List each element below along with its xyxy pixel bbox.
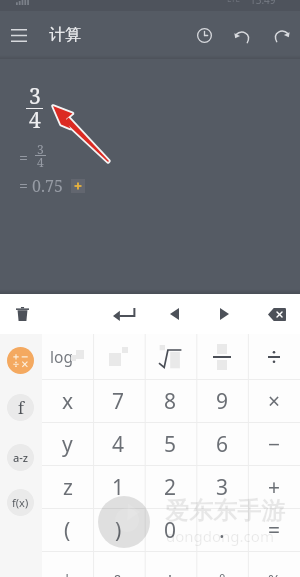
staticText: 8 [164, 387, 177, 416]
staticText: 计算 [49, 25, 81, 45]
button[interactable]: y [42, 423, 93, 466]
staticText: x [62, 387, 74, 416]
button[interactable]: History [185, 16, 223, 54]
staticText: 3 [29, 82, 41, 111]
staticText: 1 [112, 473, 125, 502]
button[interactable]: Enter [103, 294, 145, 334]
button[interactable]: Menu [0, 16, 38, 54]
button[interactable]: z [42, 466, 93, 509]
staticText: % [268, 569, 281, 577]
button[interactable]: + [248, 466, 300, 509]
button[interactable]: ) [93, 509, 144, 552]
button[interactable]: × [248, 380, 300, 423]
button[interactable]: 8 [144, 380, 196, 423]
staticText: . [219, 516, 225, 545]
button[interactable]: Functions [7, 394, 34, 421]
staticText: 9 [216, 387, 229, 416]
staticText: 4 [37, 154, 44, 170]
staticText: + [268, 473, 281, 502]
staticText: f [18, 397, 24, 419]
button[interactable]: Redo [262, 16, 300, 54]
staticText: ( [64, 516, 71, 545]
staticText: = [268, 516, 281, 545]
staticText: = [19, 147, 28, 169]
staticText: 3 [37, 141, 44, 157]
button[interactable]: 5 [144, 423, 196, 466]
button[interactable] [93, 334, 144, 380]
staticText: | [63, 569, 72, 577]
button[interactable]: Custom functions [7, 489, 34, 516]
staticText: f(x) [12, 495, 29, 510]
staticText: 4 [29, 106, 41, 135]
button[interactable]: 1 [93, 466, 144, 509]
button[interactable]: ! [144, 552, 196, 577]
button[interactable]: Add [71, 179, 85, 193]
button[interactable]: 0 [144, 509, 196, 552]
staticText: 6 [216, 430, 229, 459]
staticText: a-z [13, 450, 29, 465]
staticText: LTE [227, 0, 240, 4]
staticText: = 0.75 [19, 175, 63, 197]
button[interactable]: Move left [153, 294, 195, 334]
staticText: 2 [164, 473, 177, 502]
button[interactable] [144, 334, 196, 380]
button[interactable] [248, 334, 300, 380]
button[interactable]: x [42, 380, 93, 423]
staticText: & [113, 569, 124, 577]
button[interactable]: 2 [144, 466, 196, 509]
button[interactable]: Clear [1, 294, 43, 334]
staticText: 7 [112, 387, 125, 416]
button[interactable]: ° [196, 552, 248, 577]
button[interactable]: Letters [7, 444, 34, 471]
staticText: 4 [112, 430, 125, 459]
staticText: 13:49 [250, 0, 276, 4]
staticText: − [268, 430, 281, 459]
staticText: z [63, 473, 73, 502]
staticText: 5 [164, 430, 177, 459]
button[interactable]: 4 [93, 423, 144, 466]
button[interactable]: log [42, 334, 93, 380]
button[interactable]: | [42, 552, 93, 577]
staticText: log [50, 346, 73, 367]
button[interactable]: Backspace [256, 294, 298, 334]
button[interactable]: Operators [7, 347, 34, 374]
staticText: y [62, 430, 73, 459]
staticText: 爱东东手游 [165, 496, 285, 526]
staticText: dongdong.com [166, 526, 274, 546]
button[interactable]: Move right [203, 294, 245, 334]
staticText: 3 [216, 473, 229, 502]
button[interactable]: % [248, 552, 300, 577]
button[interactable] [196, 334, 248, 380]
staticText: ) [115, 516, 122, 545]
button[interactable]: − [248, 423, 300, 466]
button[interactable]: Undo [223, 16, 262, 55]
staticText: ! [168, 569, 173, 577]
button[interactable]: 6 [196, 423, 248, 466]
button[interactable]: & [93, 552, 144, 577]
button[interactable]: ( [42, 509, 93, 552]
staticText: 0 [164, 516, 177, 545]
button[interactable]: 9 [196, 380, 248, 423]
staticText: ° [219, 569, 226, 577]
button[interactable]: 3 [196, 466, 248, 509]
button[interactable]: . [196, 509, 248, 552]
button[interactable]: = [248, 509, 300, 552]
staticText: × [268, 387, 281, 416]
button[interactable]: 7 [93, 380, 144, 423]
